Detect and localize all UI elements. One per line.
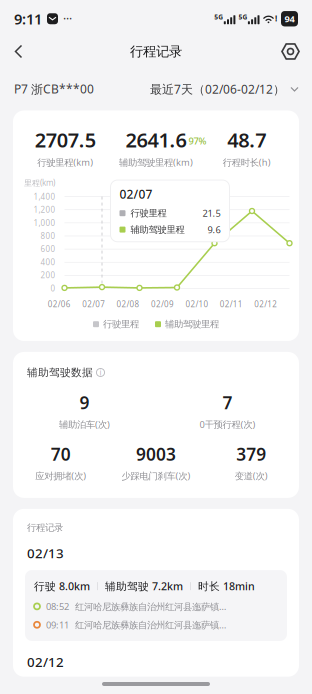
staticText: 变道(次) (235, 469, 268, 482)
staticText: 21.5 (202, 207, 220, 219)
staticText: 少踩电门刹车(次) (121, 469, 190, 482)
staticText: 08:52 (46, 600, 69, 613)
staticText: 1,400 (33, 191, 55, 202)
staticText: 02/13 (27, 544, 64, 562)
staticText: 9003 (136, 442, 176, 465)
staticText: 1,000 (33, 217, 55, 228)
staticText: 9.6 (207, 223, 220, 236)
staticText: 行驶里程(km) (37, 156, 93, 168)
staticText: 7 (222, 391, 232, 414)
staticText: ··· (63, 11, 72, 27)
staticText: P7 浙CB***00 (14, 81, 94, 97)
staticText: 02/08 (117, 299, 140, 309)
staticText: 行驶里程 (103, 318, 139, 330)
staticText: 行程记录 (27, 522, 63, 533)
staticText: 9:11 (14, 9, 42, 28)
staticText: 200 (40, 270, 55, 280)
staticText: 2641.6 (125, 126, 186, 153)
staticText: 0 (50, 283, 55, 294)
staticText: 辅助驾驶数据 (27, 366, 93, 379)
staticText: 02/12 (254, 299, 277, 309)
staticText: ! (275, 13, 277, 24)
staticText: 辅助驾驶里程(km) (119, 156, 193, 168)
staticText: 行驶里程 (130, 207, 166, 219)
button[interactable]: 行驶 8.0km (25, 570, 287, 641)
staticText: 行程时长(h) (223, 156, 271, 168)
staticText: 行程记录 (130, 43, 182, 60)
staticText: 辅助驾驶里程 (165, 318, 219, 330)
staticText: 02/09 (151, 299, 174, 309)
staticText: 02/06 (48, 299, 71, 309)
staticText: 1,200 (33, 204, 55, 215)
staticText: 02/07 (119, 186, 152, 202)
button[interactable]: Settings (269, 37, 312, 66)
staticText: 70 (51, 442, 71, 465)
staticText: 最近7天（02/06-02/12） (150, 81, 285, 97)
staticText: 红河哈尼族彝族自治州红河县迤萨镇… (75, 619, 226, 631)
staticText: 379 (236, 442, 266, 465)
staticText: 5G (238, 12, 247, 21)
staticText: 应对拥堵(次) (35, 469, 86, 482)
staticText: 辅助泊车(次) (59, 418, 110, 430)
button[interactable]: 最近7天（02/06-02/12） (150, 76, 299, 102)
staticText: 9 (79, 391, 89, 414)
staticText: 02/07 (82, 299, 105, 309)
staticText: 600 (40, 244, 55, 254)
staticText: i (99, 367, 101, 378)
staticText: 02/10 (185, 299, 208, 309)
staticText: 行驶 8.0km (34, 579, 90, 593)
staticText: 2707.5 (35, 126, 96, 153)
staticText: 时长 18min (198, 579, 255, 593)
button[interactable]: P7 浙CB***00 (14, 76, 94, 102)
staticText: 5G (214, 12, 223, 21)
staticText: 02/11 (220, 299, 243, 309)
button[interactable]: Back (0, 36, 37, 66)
staticText: 94 (284, 12, 294, 25)
staticText: 800 (40, 231, 55, 241)
staticText: 辅助驾驶里程 (130, 224, 184, 235)
staticText: 里程(km) (24, 177, 55, 188)
staticText: 0干预行程(次) (199, 418, 255, 430)
staticText: 48.7 (227, 126, 266, 153)
staticText: 97% (188, 135, 206, 147)
staticText: 02/12 (27, 653, 64, 671)
staticText: 红河哈尼族彝族自治州红河县迤萨镇… (75, 600, 226, 613)
staticText: 09:11 (46, 619, 69, 631)
staticText: 400 (40, 257, 55, 267)
staticText: 辅助驾驶 7.2km (105, 579, 183, 593)
